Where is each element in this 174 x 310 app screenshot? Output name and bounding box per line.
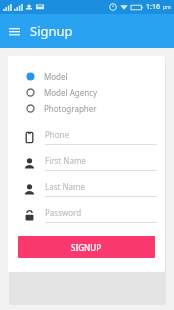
staticText: Model Agency [44, 87, 98, 98]
staticText: First Name [45, 155, 86, 166]
button[interactable]: Phone [8, 124, 165, 150]
staticText: pm [163, 4, 171, 11]
staticText: Phone [45, 129, 70, 140]
staticText: Password [45, 207, 82, 218]
staticText: Last Name [45, 181, 86, 192]
staticText: Photographer [44, 103, 97, 114]
button[interactable]: Model [8, 68, 165, 84]
button[interactable]: Photographer [8, 100, 165, 116]
staticText: Model [44, 71, 68, 82]
button[interactable]: Password [8, 202, 165, 228]
button[interactable]: SIGNUP [18, 236, 155, 258]
staticText: 1:16 [146, 2, 160, 12]
button[interactable]: Model Agency [8, 84, 165, 100]
staticText: Signup [30, 22, 73, 40]
button[interactable]: Last Name [8, 176, 165, 202]
button[interactable]: First Name [8, 150, 165, 176]
staticText: SIGNUP [71, 242, 102, 253]
button[interactable]: Open navigation menu [4, 21, 24, 41]
